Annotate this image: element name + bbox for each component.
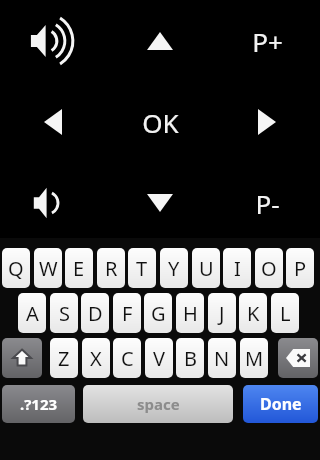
- button[interactable]: B: [176, 338, 204, 378]
- staticText: D: [88, 300, 103, 327]
- button[interactable]: Y: [160, 248, 188, 288]
- button[interactable]: Q: [2, 248, 30, 288]
- button[interactable]: P-: [214, 167, 320, 239]
- button[interactable]: F: [113, 293, 141, 333]
- staticText: I: [234, 255, 241, 282]
- button[interactable]: Channel up / navigate up: [107, 4, 213, 78]
- button[interactable]: P+: [214, 4, 320, 78]
- staticText: G: [151, 300, 166, 327]
- button[interactable]: I: [223, 248, 251, 288]
- button[interactable]: T: [128, 248, 156, 288]
- button[interactable]: W: [34, 248, 62, 288]
- staticText: Q: [8, 255, 24, 282]
- staticText: E: [73, 255, 85, 282]
- button[interactable]: V: [145, 338, 173, 378]
- staticText: space: [137, 394, 180, 414]
- button[interactable]: A: [18, 293, 46, 333]
- staticText: X: [90, 345, 102, 372]
- staticText: M: [245, 345, 264, 372]
- staticText: J: [219, 300, 225, 327]
- staticText: .?123: [20, 394, 58, 414]
- staticText: K: [247, 300, 260, 327]
- staticText: B: [184, 345, 197, 372]
- button[interactable]: H: [176, 293, 204, 333]
- staticText: P: [294, 255, 307, 282]
- button[interactable]: P: [286, 248, 314, 288]
- staticText: A: [26, 300, 39, 327]
- button[interactable]: K: [239, 293, 267, 333]
- staticText: H: [183, 300, 198, 327]
- staticText: P-: [255, 186, 280, 221]
- staticText: F: [122, 300, 133, 327]
- button[interactable]: Shift: [2, 338, 42, 378]
- staticText: N: [214, 345, 230, 372]
- button[interactable]: S: [50, 293, 78, 333]
- button[interactable]: U: [192, 248, 220, 288]
- staticText: O: [261, 255, 277, 282]
- button[interactable]: Volume up: [0, 4, 106, 78]
- staticText: W: [39, 255, 58, 282]
- button[interactable]: J: [208, 293, 236, 333]
- button[interactable]: OK: [107, 85, 213, 159]
- button[interactable]: Channel down / navigate down: [107, 167, 213, 239]
- button[interactable]: Z: [50, 338, 78, 378]
- staticText: C: [121, 345, 134, 372]
- button[interactable]: M: [240, 338, 268, 378]
- button[interactable]: space: [83, 385, 233, 423]
- button[interactable]: .?123: [2, 385, 75, 423]
- staticText: OK: [142, 105, 179, 140]
- staticText: Y: [168, 255, 180, 282]
- staticText: L: [280, 300, 291, 327]
- button[interactable]: E: [65, 248, 93, 288]
- button[interactable]: Volume down: [0, 167, 106, 239]
- staticText: S: [59, 300, 70, 327]
- button[interactable]: C: [113, 338, 141, 378]
- button[interactable]: Done: [243, 385, 318, 423]
- button[interactable]: N: [208, 338, 236, 378]
- button[interactable]: R: [97, 248, 125, 288]
- staticText: Z: [58, 345, 70, 372]
- staticText: T: [136, 255, 148, 282]
- staticText: Done: [260, 393, 302, 415]
- button[interactable]: X: [82, 338, 110, 378]
- button[interactable]: D: [81, 293, 109, 333]
- button[interactable]: L: [271, 293, 299, 333]
- button[interactable]: G: [144, 293, 172, 333]
- button[interactable]: O: [255, 248, 283, 288]
- staticText: P+: [252, 24, 283, 59]
- staticText: R: [105, 255, 118, 282]
- staticText: U: [199, 255, 214, 282]
- button[interactable]: Navigate right: [214, 85, 320, 159]
- staticText: V: [153, 345, 165, 372]
- button[interactable]: Navigate left: [0, 85, 106, 159]
- button[interactable]: Backspace: [278, 338, 318, 378]
